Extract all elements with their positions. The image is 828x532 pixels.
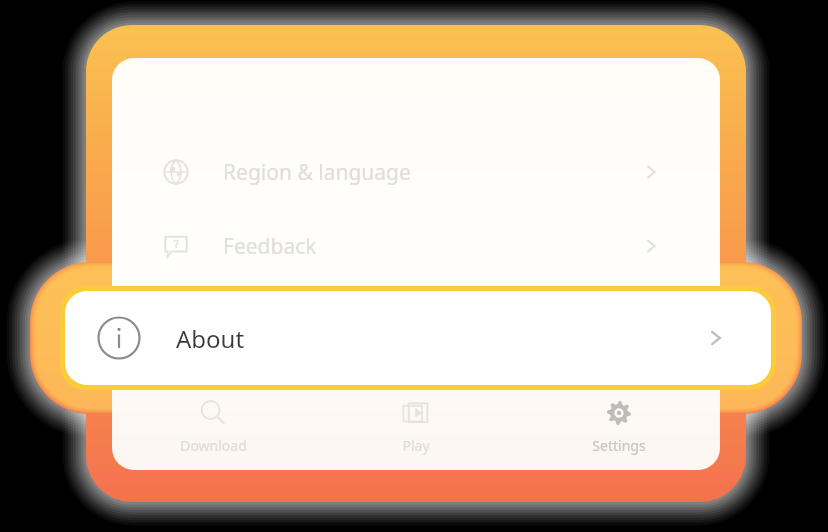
button[interactable]: Download: [112, 386, 314, 455]
staticText: About: [176, 322, 245, 355]
staticText: Settings: [592, 436, 646, 455]
staticText: Region & language: [223, 158, 411, 187]
staticText: Play: [402, 436, 430, 455]
button[interactable]: About: [65, 291, 771, 385]
button[interactable]: Play: [314, 386, 517, 455]
staticText: Feedback: [223, 232, 317, 261]
staticText: Share Snaptube: [223, 305, 380, 334]
button[interactable]: Settings: [517, 386, 720, 455]
button[interactable]: Region & language: [112, 148, 720, 196]
button[interactable]: Share Snaptube: [112, 295, 720, 343]
button[interactable]: Feedback: [112, 222, 720, 270]
staticText: Download: [180, 436, 247, 455]
